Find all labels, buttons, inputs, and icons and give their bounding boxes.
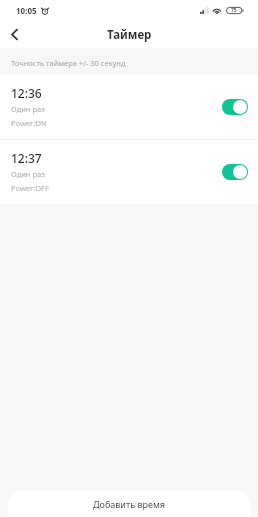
staticText: Один раз — [11, 169, 45, 179]
button[interactable]: 12:36 — [0, 75, 258, 139]
staticText: Таймер — [107, 27, 152, 43]
button[interactable]: Turn timer off — [222, 164, 248, 180]
button[interactable]: Добавить время — [8, 491, 250, 517]
staticText: Добавить время — [93, 498, 165, 510]
button[interactable]: 12:37 — [0, 140, 258, 204]
staticText: 75 — [231, 7, 237, 14]
button[interactable]: Turn timer off — [222, 99, 248, 115]
staticText: 10:05 — [16, 5, 37, 16]
staticText: Точность таймера +/- 30 секунд — [11, 58, 126, 68]
staticText: 12:37 — [11, 150, 42, 166]
staticText: Power:ON — [11, 118, 47, 128]
staticText: Один раз — [11, 104, 45, 114]
staticText: Power:OFF — [11, 183, 49, 193]
staticText: 12:36 — [11, 85, 42, 101]
button[interactable]: Back — [1, 21, 28, 48]
